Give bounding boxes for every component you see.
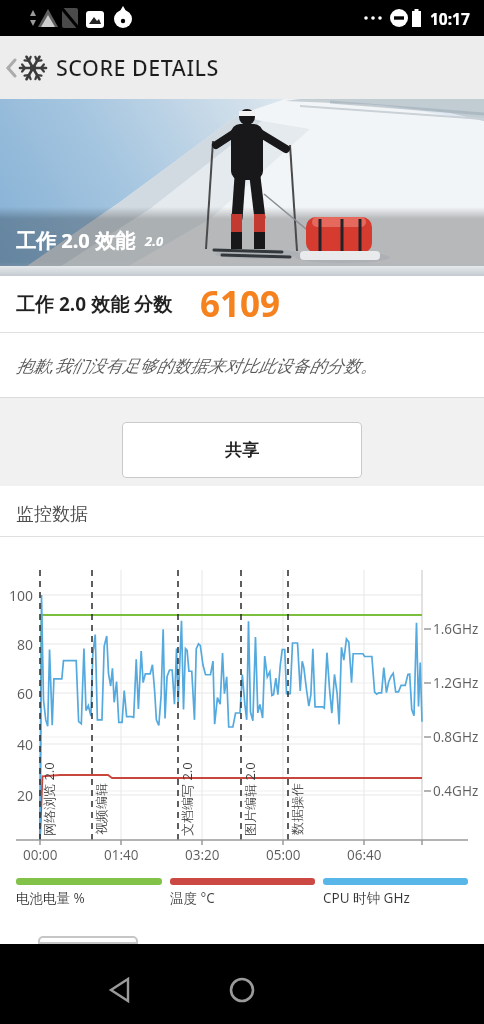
staticText: 01:40: [104, 846, 139, 864]
staticText: 文档编写 2.0: [178, 762, 196, 836]
staticText: 2.0: [145, 232, 164, 250]
staticText: 0.4GHz: [433, 782, 479, 800]
staticText: 6109: [200, 280, 281, 328]
staticText: 视频编辑: [93, 783, 109, 835]
staticText: 0.8GHz: [433, 728, 479, 746]
button[interactable]: [212, 960, 272, 1020]
staticText: 1.6GHz: [433, 620, 479, 638]
staticText: 80: [17, 635, 34, 654]
staticText: 数据操作: [289, 783, 305, 835]
staticText: 1.2GHz: [433, 674, 479, 692]
button[interactable]: [91, 960, 151, 1020]
staticText: 06:40: [347, 846, 382, 864]
staticText: 20: [17, 786, 34, 805]
staticText: 工作 2.0 效能: [16, 227, 135, 254]
staticText: 40: [17, 735, 34, 754]
staticText: CPU 时钟 GHz: [323, 889, 410, 907]
staticText: 抱歉,我们没有足够的数据来对比此设备的分数。: [16, 354, 378, 377]
staticText: SCORE DETAILS: [56, 53, 219, 82]
staticText: 共享: [225, 440, 259, 461]
staticText: 图片编辑 2.0: [241, 762, 259, 836]
staticText: 网络浏览 2.0: [40, 762, 58, 836]
button[interactable]: 共享: [122, 422, 362, 478]
staticText: 工作 2.0 效能 分数: [16, 291, 172, 317]
staticText: 60: [17, 684, 34, 703]
staticText: 电池电量 %: [16, 889, 85, 907]
button[interactable]: SCORE DETAILS: [0, 36, 484, 99]
staticText: 监控数据: [16, 503, 88, 526]
staticText: 03:20: [185, 846, 220, 864]
staticText: 100: [9, 586, 34, 605]
staticText: 05:00: [266, 846, 301, 864]
staticText: 00:00: [23, 846, 58, 864]
staticText: 10:17: [430, 8, 470, 29]
staticText: 温度 °C: [170, 889, 215, 907]
